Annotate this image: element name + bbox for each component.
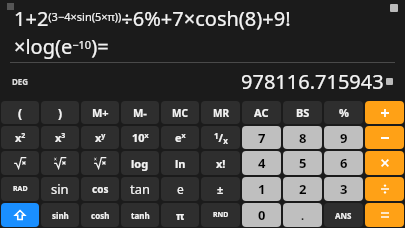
staticText: ×log(e−10)= xyxy=(14,33,109,60)
button[interactable]: cos xyxy=(81,177,119,201)
button[interactable]: Shift xyxy=(1,203,39,227)
button[interactable]: xy xyxy=(81,126,119,149)
button[interactable]: log xyxy=(121,151,159,175)
button[interactable]: sinh xyxy=(41,203,79,227)
staticText: 1 xyxy=(258,180,266,198)
staticText: tan xyxy=(130,180,151,198)
staticText: 8 xyxy=(299,129,307,147)
button[interactable]: MR xyxy=(201,101,240,124)
staticText: xy xyxy=(95,130,106,145)
button[interactable]: ex xyxy=(161,126,199,149)
staticText: ± xyxy=(217,182,224,197)
button[interactable]: MC xyxy=(161,101,199,124)
staticText: ( xyxy=(18,105,23,121)
button[interactable]: Equals xyxy=(365,203,404,227)
staticText: cos xyxy=(92,182,109,196)
staticText: BS xyxy=(296,105,310,120)
staticText: 6 xyxy=(340,154,348,172)
button[interactable]: x! xyxy=(201,151,240,175)
button[interactable]: x3 xyxy=(41,126,79,149)
staticText: 1/x xyxy=(214,130,228,146)
staticText: sinh xyxy=(52,210,69,221)
staticText: MC xyxy=(172,106,188,120)
staticText: 9 xyxy=(340,129,348,147)
button[interactable]: AC xyxy=(242,101,281,124)
button[interactable]: ANS xyxy=(324,203,363,227)
button[interactable]: cosh xyxy=(81,203,119,227)
staticText: x2 xyxy=(15,130,26,145)
button[interactable]: Divide xyxy=(365,177,404,201)
button[interactable]: RND xyxy=(201,203,240,227)
button[interactable]: Copy xyxy=(390,4,398,12)
staticText: 10x xyxy=(132,130,149,145)
button[interactable]: e xyxy=(161,177,199,201)
staticText: M- xyxy=(133,105,147,120)
button[interactable]: RAD xyxy=(1,177,39,201)
button[interactable]: BS xyxy=(283,101,322,124)
button[interactable]: ( xyxy=(1,101,39,124)
staticText: cosh xyxy=(91,210,110,221)
button[interactable]: 10x xyxy=(121,126,159,149)
staticText: MR xyxy=(213,106,229,120)
button[interactable]: . xyxy=(283,203,322,227)
button[interactable]: ± xyxy=(201,177,240,201)
staticText: DEG xyxy=(12,76,29,87)
staticText: 978116.715943 xyxy=(241,68,384,95)
button[interactable]: ln xyxy=(161,151,199,175)
button[interactable]: 1/x xyxy=(201,126,240,149)
button[interactable]: 7 xyxy=(242,126,281,149)
staticText: M+ xyxy=(92,105,109,120)
button[interactable]: Cube root xyxy=(41,151,79,175)
staticText: ) xyxy=(58,105,63,121)
button[interactable]: 0 xyxy=(242,203,281,227)
staticText: tanh xyxy=(131,210,150,221)
button[interactable]: sin xyxy=(41,177,79,201)
button[interactable]: Square root xyxy=(1,151,39,175)
staticText: 0 xyxy=(258,206,266,224)
staticText: ln xyxy=(175,156,186,171)
staticText: RAD xyxy=(13,184,28,194)
button[interactable]: 6 xyxy=(324,151,363,175)
staticText: % xyxy=(339,105,349,120)
button[interactable]: 1 xyxy=(242,177,281,201)
staticText: 2 xyxy=(299,180,307,198)
staticText: π xyxy=(176,208,185,223)
button[interactable]: ) xyxy=(41,101,79,124)
button[interactable]: Minus xyxy=(365,126,404,149)
staticText: ANS xyxy=(335,210,352,221)
button[interactable]: 8 xyxy=(283,126,322,149)
button[interactable]: tan xyxy=(121,177,159,201)
button[interactable]: 2 xyxy=(283,177,322,201)
button[interactable]: Plus xyxy=(365,101,404,124)
button[interactable]: tanh xyxy=(121,203,159,227)
button[interactable]: 9 xyxy=(324,126,363,149)
button[interactable]: 5 xyxy=(283,151,322,175)
button[interactable]: Copy result xyxy=(386,78,393,85)
staticText: AC xyxy=(254,105,269,120)
staticText: ex xyxy=(175,130,186,145)
button[interactable]: 4 xyxy=(242,151,281,175)
staticText: 4 xyxy=(258,154,266,172)
button[interactable]: M- xyxy=(121,101,159,124)
button[interactable]: Multiply xyxy=(365,151,404,175)
button[interactable]: x2 xyxy=(1,126,39,149)
staticText: . xyxy=(301,208,305,223)
button[interactable]: % xyxy=(324,101,363,124)
staticText: 3 xyxy=(340,180,348,198)
staticText: log xyxy=(131,156,149,171)
button[interactable]: M+ xyxy=(81,101,119,124)
staticText: x3 xyxy=(55,130,66,145)
staticText: 7 xyxy=(258,129,266,147)
button[interactable]: π xyxy=(161,203,199,227)
staticText: 1+2(3−4×sin(5×π))÷6%+7×cosh(8)+9! xyxy=(14,5,291,32)
staticText: e xyxy=(177,181,184,197)
staticText: 5 xyxy=(299,154,307,172)
staticText: x! xyxy=(216,156,226,171)
button[interactable]: Nth root xyxy=(81,151,119,175)
staticText: RND xyxy=(213,210,229,220)
staticText: sin xyxy=(51,180,69,198)
button[interactable]: 3 xyxy=(324,177,363,201)
